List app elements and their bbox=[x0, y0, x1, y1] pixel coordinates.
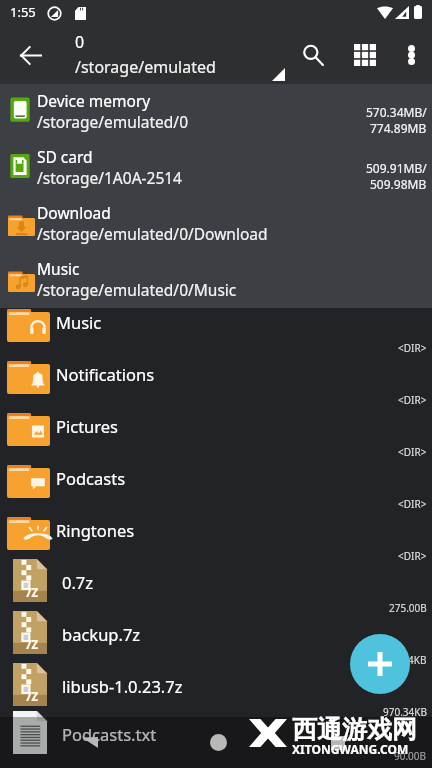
staticText: Podcasts.txt bbox=[62, 723, 157, 745]
staticText: <DIR> bbox=[398, 341, 427, 355]
staticText: 774.89MB bbox=[370, 120, 427, 136]
staticText: XITONGWANG.COM bbox=[292, 741, 409, 757]
staticText: Music bbox=[37, 258, 80, 279]
staticText: 西通游戏网 bbox=[292, 714, 417, 745]
staticText: 0.7z bbox=[62, 571, 94, 593]
staticText: Notifications bbox=[56, 363, 155, 385]
staticText: 7Z bbox=[25, 689, 39, 705]
button[interactable]: Download bbox=[0, 196, 432, 252]
staticText: Music bbox=[56, 311, 102, 333]
button[interactable]: Podcasts bbox=[0, 464, 432, 516]
button[interactable]: Device memory bbox=[0, 84, 432, 140]
staticText: <DIR> bbox=[398, 393, 427, 407]
button[interactable]: Add bbox=[350, 634, 410, 694]
staticText: Ringtones bbox=[56, 519, 135, 541]
staticText: /storage/emulated bbox=[75, 56, 216, 78]
staticText: 509.98MB bbox=[370, 176, 427, 192]
staticText: /storage/emulated/0/Music bbox=[37, 279, 237, 300]
button[interactable]: Back bbox=[8, 33, 52, 77]
staticText: libusb-1.0.23.7z bbox=[62, 675, 183, 697]
button[interactable]: Recent apps bbox=[312, 717, 364, 768]
button[interactable]: Pictures bbox=[0, 412, 432, 464]
staticText: <DIR> bbox=[398, 549, 427, 563]
button[interactable]: SD card bbox=[0, 140, 432, 196]
staticText: 0 bbox=[75, 31, 85, 53]
staticText: Device memory bbox=[37, 90, 151, 111]
button[interactable]: Notifications bbox=[0, 360, 432, 412]
staticText: /storage/emulated/0 bbox=[37, 111, 189, 132]
staticText: 7Z bbox=[25, 637, 39, 653]
button[interactable]: Back bbox=[64, 717, 116, 768]
button[interactable]: Grid view bbox=[343, 33, 387, 77]
button[interactable]: Music bbox=[0, 252, 432, 308]
staticText: Download bbox=[37, 202, 111, 223]
button[interactable]: Home bbox=[192, 717, 244, 768]
staticText: <DIR> bbox=[398, 445, 427, 459]
staticText: 970.34KB bbox=[383, 705, 427, 719]
staticText: 570.34MB/ bbox=[366, 104, 427, 120]
staticText: SD card bbox=[37, 146, 93, 167]
staticText: 1:55 bbox=[10, 3, 36, 21]
button[interactable]: More options bbox=[387, 35, 427, 75]
button[interactable]: Ringtones bbox=[0, 516, 432, 568]
button[interactable]: Music bbox=[0, 308, 432, 360]
staticText: /storage/emulated/0/Download bbox=[37, 223, 268, 244]
staticText: 90.00B bbox=[394, 749, 427, 763]
staticText: Pictures bbox=[56, 415, 119, 437]
staticText: 275.00B bbox=[389, 601, 427, 615]
button[interactable]: Search bbox=[295, 31, 343, 79]
staticText: 7Z bbox=[25, 585, 39, 601]
button[interactable]: 7Z bbox=[0, 620, 432, 672]
staticText: 509.91MB/ bbox=[366, 160, 427, 176]
staticText: Podcasts bbox=[56, 467, 126, 489]
staticText: backup.7z bbox=[62, 623, 141, 645]
button[interactable]: 7Z bbox=[0, 568, 432, 620]
button[interactable]: 7Z bbox=[0, 672, 432, 724]
staticText: /storage/1A0A-2514 bbox=[37, 167, 182, 188]
staticText: 1.24KB bbox=[394, 653, 427, 667]
staticText: <DIR> bbox=[398, 497, 427, 511]
button[interactable]: Podcasts.txt bbox=[0, 724, 432, 768]
